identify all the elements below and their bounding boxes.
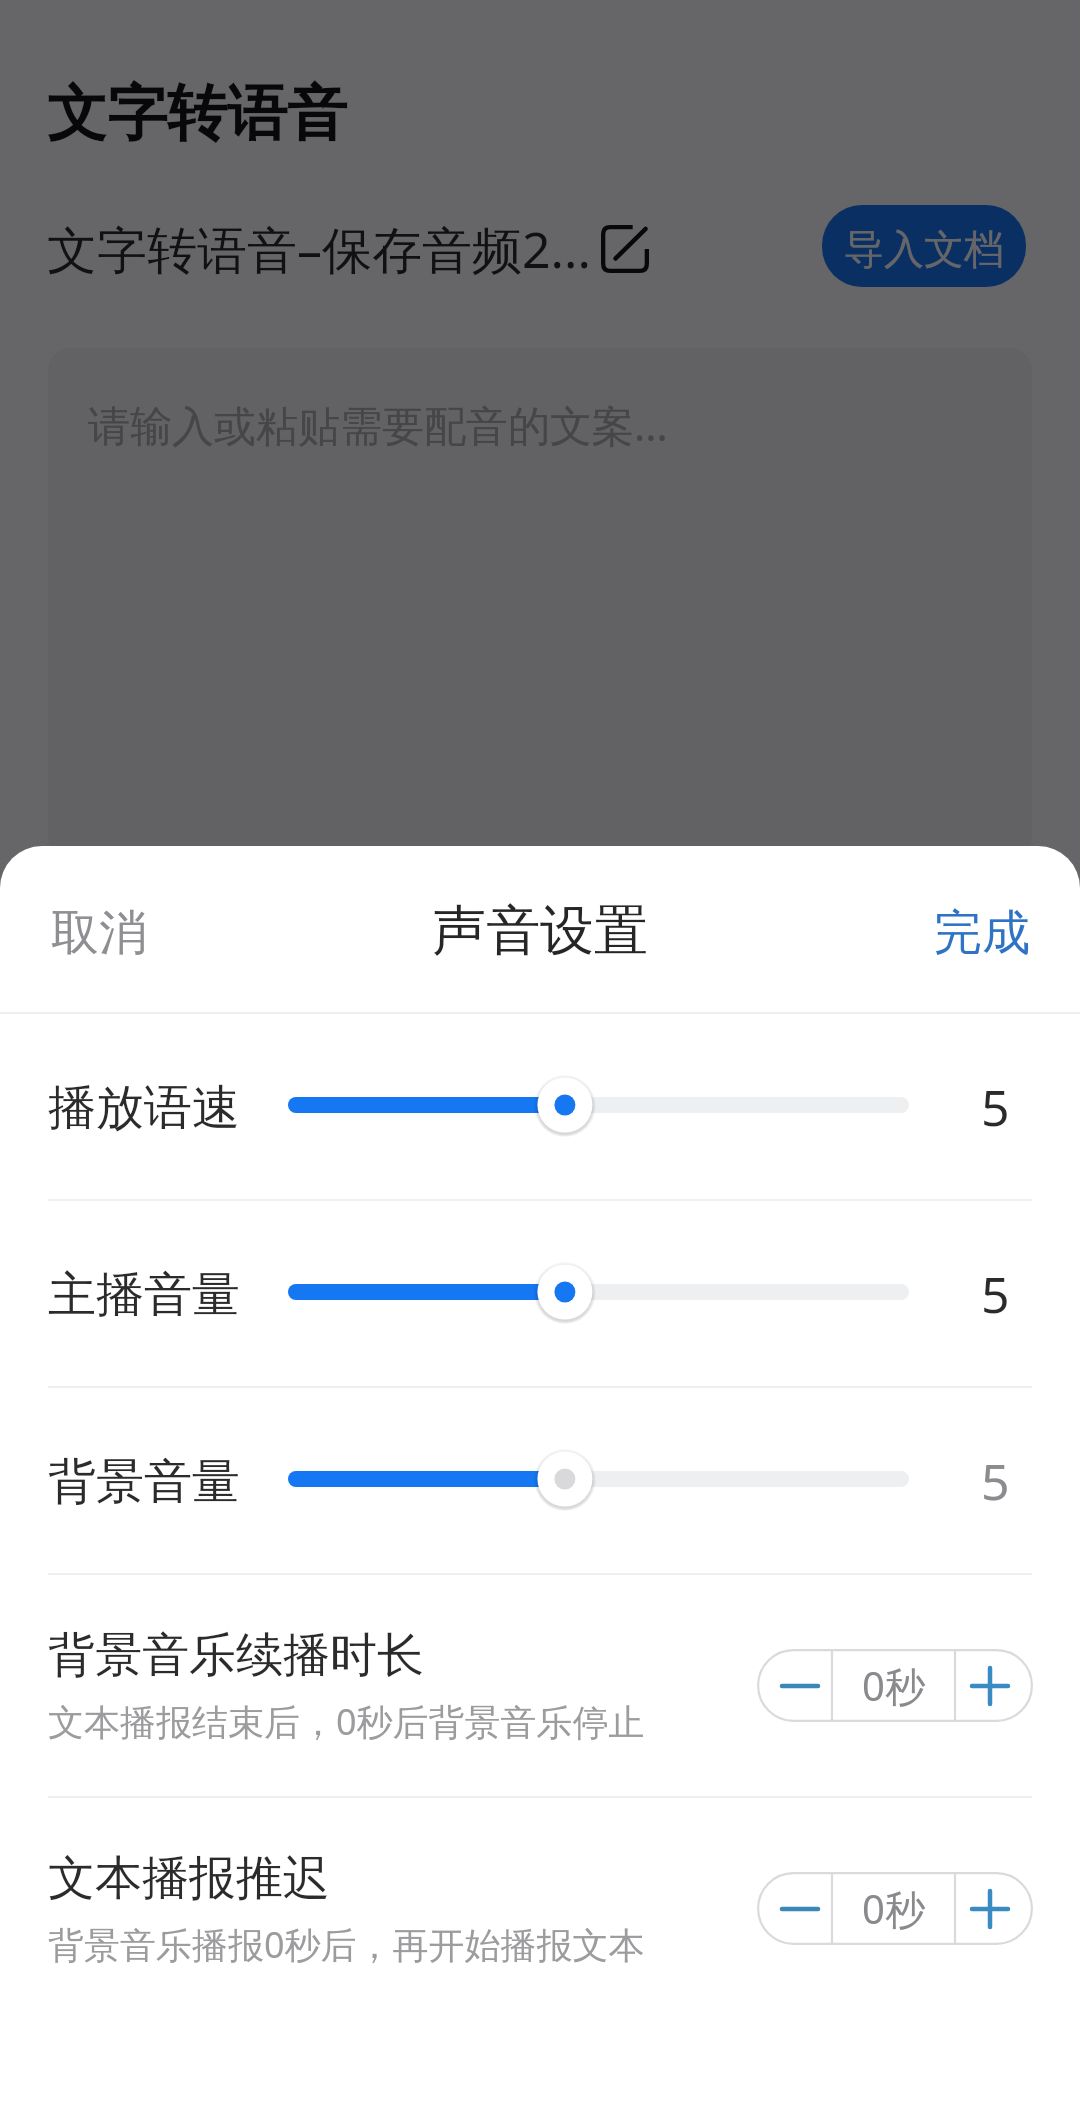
- button[interactable]: 文字转语音–保存音频2...: [47, 215, 649, 283]
- staticText: 0秒: [862, 1881, 925, 1936]
- button[interactable]: 取消: [27, 881, 171, 977]
- button[interactable]: 导入文档: [822, 205, 1026, 287]
- button[interactable]: Increase: [955, 1649, 1033, 1722]
- button[interactable]: Rename: [601, 225, 649, 273]
- staticText: 文本播报结束后，0秒后背景音乐停止: [48, 1697, 645, 1746]
- button[interactable]: 请输入或粘贴需要配音的文案...: [48, 348, 1032, 860]
- staticText: 完成: [934, 903, 1030, 963]
- staticText: 声音设置: [432, 897, 648, 965]
- button[interactable]: 播放语速: [0, 1014, 1080, 1199]
- staticText: 背景音乐续播时长: [48, 1626, 424, 1685]
- button[interactable]: Increase: [955, 1872, 1033, 1945]
- staticText: 文字转语音–保存音频2...: [47, 215, 591, 283]
- staticText: 文本播报推迟: [48, 1849, 330, 1908]
- staticText: 请输入或粘贴需要配音的文案...: [88, 396, 668, 453]
- staticText: 主播音量: [48, 1265, 240, 1325]
- staticText: 5: [981, 1447, 1010, 1515]
- button[interactable]: 完成: [910, 881, 1054, 977]
- staticText: 0秒: [862, 1658, 925, 1713]
- staticText: 取消: [51, 903, 147, 963]
- button[interactable]: 背景音乐续播时长: [0, 1575, 1080, 1796]
- staticText: 5: [981, 1073, 1010, 1141]
- staticText: 背景音量: [48, 1452, 240, 1512]
- staticText: 背景音乐播报0秒后，再开始播报文本: [48, 1920, 645, 1969]
- button[interactable]: Decrease: [757, 1872, 832, 1945]
- button[interactable]: Decrease: [757, 1649, 832, 1722]
- staticText: 导入文档: [844, 224, 1004, 274]
- staticText: 文字转语音: [47, 76, 347, 152]
- staticText: 5: [981, 1260, 1010, 1328]
- button[interactable]: 主播音量: [0, 1201, 1080, 1386]
- button[interactable]: 背景音量: [0, 1388, 1080, 1573]
- button[interactable]: 文本播报推迟: [0, 1798, 1080, 2019]
- staticText: 播放语速: [48, 1078, 240, 1138]
